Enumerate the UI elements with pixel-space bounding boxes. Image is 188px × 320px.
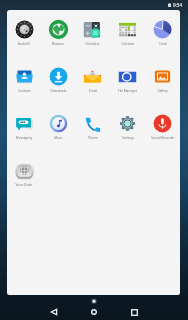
button[interactable]: File Manager (110, 57, 145, 104)
staticText: 9:54 (173, 2, 183, 8)
button[interactable]: Gallery (145, 57, 180, 104)
button[interactable]: Sound Recorder (145, 104, 180, 151)
button[interactable]: Settings (110, 104, 145, 151)
staticText: Gallery (157, 89, 168, 93)
button[interactable]: Voice Dialer (7, 151, 41, 198)
staticText: Phone (88, 136, 98, 140)
staticText: Clock (159, 42, 167, 46)
staticText: AudioFX (18, 42, 30, 46)
button[interactable]: Clock (145, 10, 180, 57)
button[interactable]: Home (80, 302, 108, 320)
staticText: Calendar (121, 42, 135, 46)
button[interactable]: Back (40, 302, 68, 320)
button[interactable]: Email (75, 57, 110, 104)
staticText: Contacts (18, 89, 31, 93)
button[interactable]: Downloads (41, 57, 75, 104)
staticText: Music (54, 136, 63, 140)
staticText: Voice Dialer (15, 183, 33, 187)
button[interactable]: Contacts (7, 57, 41, 104)
staticText: Messaging (16, 136, 32, 140)
staticText: File Manager (118, 89, 137, 93)
button[interactable]: Calendar (110, 10, 145, 57)
button[interactable]: Messaging (7, 104, 41, 151)
staticText: Sound Recorder (151, 136, 175, 140)
button[interactable]: Phone (75, 104, 110, 151)
button[interactable]: Recent apps (120, 302, 148, 320)
staticText: Downloads (50, 89, 67, 93)
staticText: Email (89, 89, 97, 93)
staticText: Calculator (85, 42, 100, 46)
button[interactable]: Browser (41, 10, 75, 57)
staticText: Browser (52, 42, 64, 46)
button[interactable]: Music (41, 104, 75, 151)
button[interactable]: Calculator (75, 10, 110, 57)
staticText: Settings (122, 136, 134, 140)
button[interactable]: AudioFX (7, 10, 41, 57)
